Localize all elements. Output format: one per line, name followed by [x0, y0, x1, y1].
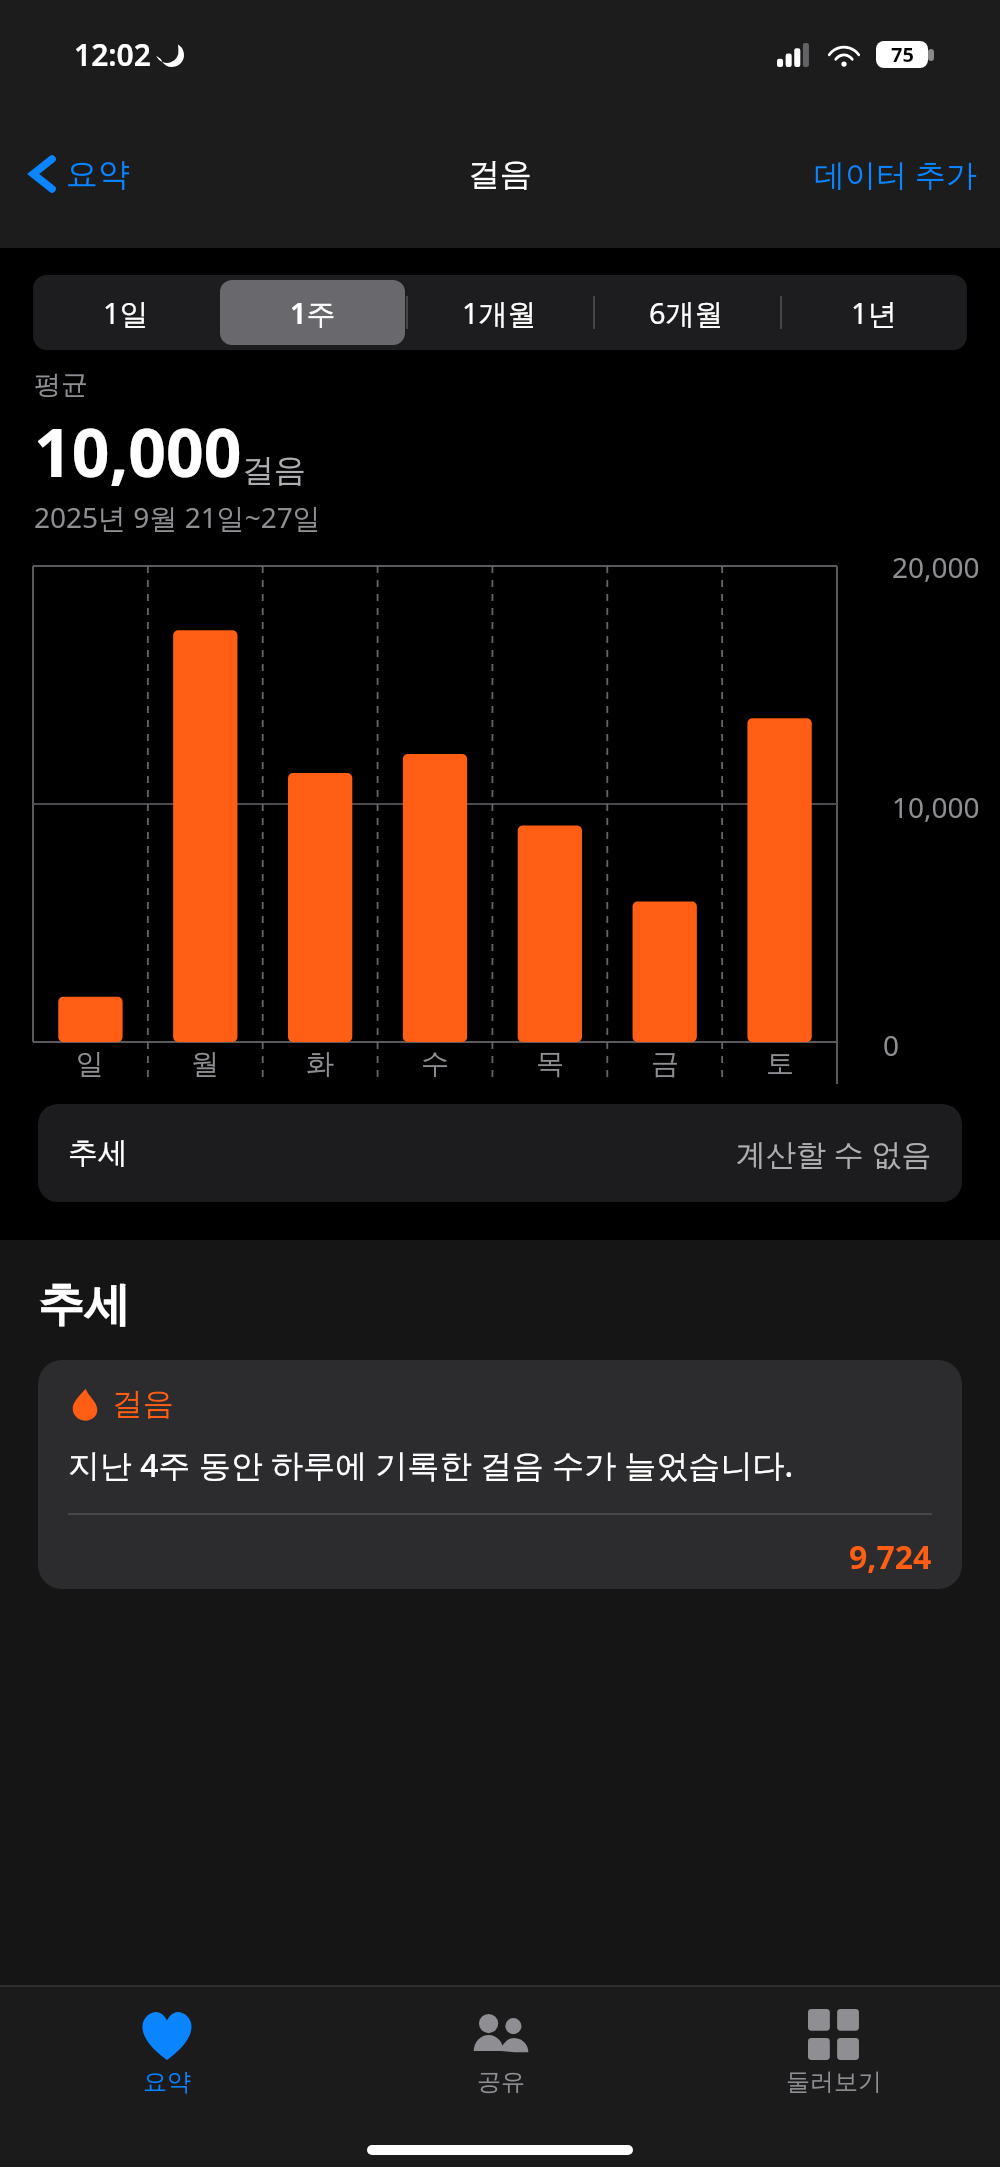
staticText: 일: [76, 1046, 104, 1081]
staticText: 10,000: [34, 406, 242, 496]
button[interactable]: 1년: [780, 275, 967, 350]
staticText: 계산할 수 없음: [736, 1133, 932, 1174]
staticText: 걸음: [242, 450, 306, 490]
staticText: 20,000: [892, 548, 980, 586]
staticText: 1주: [290, 293, 336, 333]
staticText: 1일: [103, 293, 149, 333]
staticText: 75: [891, 41, 914, 68]
staticText: 지난 4주 동안 하루에 기록한 걸음 수가 늘었습니다.: [68, 1443, 794, 1487]
button[interactable]: 추세: [38, 1104, 962, 1202]
staticText: 화: [306, 1046, 334, 1081]
staticText: 추세: [68, 1134, 128, 1172]
staticText: 토: [766, 1046, 794, 1081]
button[interactable]: 요약: [22, 144, 138, 204]
button[interactable]: 데이터 추가: [792, 141, 1000, 207]
button[interactable]: 요약: [0, 2001, 334, 2105]
staticText: 걸음: [468, 154, 532, 194]
staticText: 10,000: [892, 788, 980, 826]
button[interactable]: 1개월: [406, 275, 593, 350]
staticText: 12:02: [74, 34, 151, 75]
staticText: 공유: [477, 2067, 525, 2097]
staticText: 수: [421, 1046, 449, 1081]
button[interactable]: 1주: [219, 275, 406, 350]
staticText: 6개월: [649, 293, 724, 333]
button[interactable]: 공유: [334, 2001, 667, 2105]
staticText: 걸음: [112, 1384, 174, 1423]
button[interactable]: 둘러보기: [667, 2001, 1000, 2105]
staticText: 2025년 9월 21일~27일: [34, 498, 321, 536]
staticText: 9,724: [849, 1535, 932, 1579]
staticText: 요약: [143, 2067, 191, 2097]
staticText: 목: [536, 1046, 564, 1081]
staticText: 요약: [66, 154, 130, 194]
staticText: 평균: [34, 368, 88, 402]
staticText: 추세: [38, 1276, 130, 1334]
button[interactable]: 6개월: [593, 275, 780, 350]
button[interactable]: 걸음: [38, 1360, 962, 1589]
staticText: 1개월: [462, 293, 537, 333]
staticText: 금: [651, 1046, 679, 1081]
button[interactable]: 1일: [33, 275, 219, 350]
staticText: 0: [883, 1026, 900, 1064]
staticText: 1년: [851, 293, 897, 333]
staticText: 월: [191, 1046, 219, 1081]
staticText: 둘러보기: [786, 2067, 882, 2097]
